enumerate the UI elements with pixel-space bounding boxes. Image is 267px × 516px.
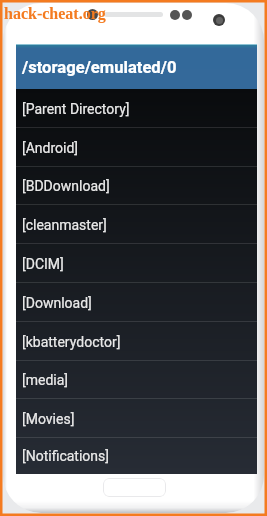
button[interactable]: [Android] [16,128,257,167]
staticText: hack-cheat.org [4,5,106,23]
button[interactable]: [BDDownload] [16,167,257,205]
button[interactable]: [Movies] [16,399,257,438]
staticText: /storage/emulated/0 [22,58,177,77]
button[interactable]: /storage/emulated/0 [16,44,257,89]
staticText: [media] [22,372,69,388]
button[interactable]: [Download] [16,283,257,322]
staticText: [Download] [22,295,92,311]
staticText: [Movies] [22,411,75,427]
staticText: [Android] [22,140,79,156]
button[interactable]: Home [103,478,166,497]
staticText: [Notifications] [22,448,110,464]
button[interactable]: [Notifications] [16,438,257,474]
staticText: [cleanmaster] [22,217,107,233]
button[interactable]: [cleanmaster] [16,205,257,244]
staticText: [Parent Directory] [22,101,130,117]
button[interactable]: [Parent Directory] [16,89,257,128]
staticText: [kbatterydoctor] [22,334,121,350]
staticText: [BDDownload] [22,178,110,194]
button[interactable]: [DCIM] [16,244,257,283]
button[interactable]: [media] [16,361,257,399]
button[interactable]: [kbatterydoctor] [16,322,257,361]
staticText: [DCIM] [22,256,64,272]
